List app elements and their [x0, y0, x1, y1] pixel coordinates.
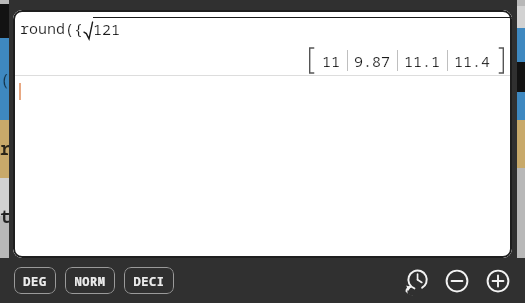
button[interactable]: Zoom out [442, 266, 472, 296]
button[interactable]: DECI [124, 267, 174, 294]
button[interactable]: History [401, 266, 431, 296]
staticText: t [0, 205, 11, 228]
button[interactable]: NORM [65, 267, 115, 294]
staticText: 121 [93, 19, 121, 39]
staticText: 11.4 [454, 51, 491, 71]
button[interactable]: Zoom in [483, 266, 513, 296]
staticText: 11.1 [404, 51, 441, 71]
button[interactable]: round({ [13, 10, 512, 46]
staticText: round({ [20, 18, 84, 38]
staticText: 9.87 [354, 51, 391, 71]
staticText: DEG [23, 273, 47, 289]
button[interactable] [13, 76, 512, 258]
staticText: DECI [133, 273, 165, 289]
staticText: NORM [74, 273, 106, 289]
staticText: r [0, 137, 11, 160]
button[interactable]: DEG [14, 267, 56, 294]
staticText: 11 [322, 51, 341, 71]
button[interactable]: 11 [13, 46, 512, 75]
staticText: ( [0, 68, 11, 91]
